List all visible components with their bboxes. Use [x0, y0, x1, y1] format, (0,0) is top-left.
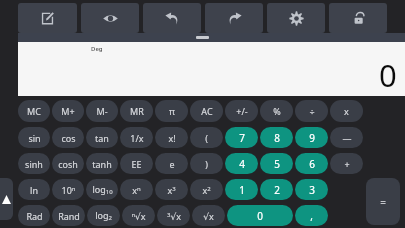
button[interactable]: x2 — [190, 179, 223, 200]
staticText: e — [169, 158, 175, 170]
staticText: +/- — [236, 105, 248, 117]
staticText: log2 — [95, 209, 112, 222]
staticText: 3 — [309, 183, 315, 197]
button[interactable]: x! — [155, 127, 188, 148]
button[interactable]: Rad — [18, 205, 50, 226]
staticText: ) — [205, 158, 208, 170]
button[interactable]: 3√x — [157, 205, 190, 226]
staticText: √x — [203, 210, 214, 222]
staticText: π — [169, 105, 175, 117]
button[interactable]: ) — [190, 153, 223, 174]
button[interactable]: x — [330, 100, 363, 122]
staticText: Rand — [58, 210, 80, 222]
button[interactable]: 1/x — [120, 127, 153, 148]
button[interactable]: Rand — [52, 205, 85, 226]
staticText: 0 — [257, 209, 263, 223]
staticText: sinh — [25, 158, 43, 170]
staticText: ÷ — [309, 105, 315, 117]
button[interactable]: 5 — [260, 153, 293, 174]
button[interactable]: cosh — [52, 153, 84, 174]
button[interactable]: 1 — [225, 179, 258, 200]
button[interactable]: Undo — [143, 3, 201, 33]
staticText: = — [380, 195, 386, 209]
staticText: % — [273, 105, 281, 117]
staticText: tanh — [92, 158, 112, 170]
button[interactable]: Collapse keypad — [0, 178, 13, 220]
staticText: n√x — [131, 210, 146, 222]
button[interactable]: 3 — [295, 179, 328, 200]
staticText: ( — [205, 132, 208, 144]
button[interactable]: 6 — [295, 153, 328, 174]
button[interactable]: M+ — [52, 100, 84, 122]
staticText: 6 — [309, 157, 315, 171]
button[interactable]: MC — [18, 100, 50, 122]
button[interactable]: log10 — [86, 179, 118, 200]
button[interactable]: 8 — [260, 127, 293, 148]
staticText: MR — [130, 105, 144, 117]
staticText: , — [310, 209, 313, 223]
button[interactable]: M- — [86, 100, 118, 122]
button[interactable]: 0 — [227, 205, 293, 226]
staticText: x3 — [167, 184, 176, 196]
staticText: ln — [30, 184, 38, 196]
button[interactable]: MR — [120, 100, 153, 122]
staticText: x2 — [202, 184, 211, 196]
staticText: cos — [61, 132, 76, 144]
button[interactable]: ( — [190, 127, 223, 148]
button[interactable]: , — [295, 205, 328, 226]
button[interactable]: +/- — [225, 100, 258, 122]
staticText: x! — [168, 132, 176, 144]
button[interactable]: Preview — [81, 3, 139, 33]
staticText: — — [342, 132, 352, 144]
button[interactable]: 10n — [52, 179, 84, 200]
staticText: 7 — [239, 131, 245, 145]
button[interactable]: ÷ — [295, 100, 328, 122]
button[interactable]: 7 — [225, 127, 258, 148]
staticText: xn — [132, 184, 141, 196]
button[interactable]: + — [330, 153, 363, 174]
staticText: 1 — [239, 183, 245, 197]
button[interactable]: Edit — [18, 3, 77, 33]
button[interactable]: π — [155, 100, 188, 122]
staticText: x — [344, 105, 349, 117]
button[interactable]: EE — [120, 153, 153, 174]
button[interactable]: AC — [190, 100, 223, 122]
staticText: 9 — [309, 131, 315, 145]
staticText: Rad — [26, 210, 43, 222]
button[interactable]: = — [366, 178, 400, 225]
button[interactable]: 4 — [225, 153, 258, 174]
button[interactable]: √x — [192, 205, 225, 226]
button[interactable]: sin — [18, 127, 50, 148]
button[interactable]: tan — [86, 127, 118, 148]
button[interactable]: x3 — [155, 179, 188, 200]
staticText: 8 — [274, 131, 280, 145]
staticText: 3√x — [167, 210, 181, 222]
button[interactable]: Redo — [205, 3, 263, 33]
staticText: 4 — [239, 157, 245, 171]
button[interactable]: e — [155, 153, 188, 174]
staticText: tan — [95, 132, 109, 144]
button[interactable]: 2 — [260, 179, 293, 200]
staticText: 5 — [274, 157, 280, 171]
button[interactable]: Settings — [267, 3, 325, 33]
button[interactable]: — — [330, 127, 363, 148]
staticText: M+ — [61, 105, 75, 117]
staticText: 10n — [61, 184, 76, 196]
button[interactable]: log2 — [87, 205, 120, 226]
button[interactable]: 9 — [295, 127, 328, 148]
button[interactable]: xn — [120, 179, 153, 200]
button[interactable]: tanh — [86, 153, 118, 174]
staticText: + — [344, 158, 350, 170]
staticText: 0 — [379, 54, 397, 96]
staticText: Deg — [91, 45, 103, 53]
button[interactable]: sinh — [18, 153, 50, 174]
staticText: cosh — [58, 158, 78, 170]
staticText: 2 — [274, 183, 280, 197]
button[interactable]: % — [260, 100, 293, 122]
button[interactable]: cos — [52, 127, 84, 148]
staticText: MC — [27, 105, 41, 117]
staticText: EE — [131, 158, 142, 170]
button[interactable]: Unlock — [329, 3, 387, 33]
button[interactable]: ln — [18, 179, 50, 200]
button[interactable]: n√x — [122, 205, 155, 226]
